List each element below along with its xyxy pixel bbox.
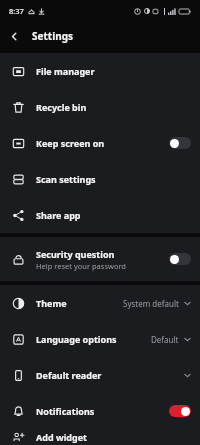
button[interactable]: Theme <box>0 285 200 321</box>
staticText: Theme <box>36 297 67 309</box>
staticText: Recycle bin <box>36 101 87 113</box>
staticText: Default reader <box>36 369 102 381</box>
button[interactable]: Default reader <box>0 357 200 393</box>
button[interactable]: Back <box>0 22 28 50</box>
button[interactable]: Keep screen on <box>0 125 200 161</box>
staticText: Help reset your password <box>36 261 126 271</box>
button[interactable]: Recycle bin <box>0 89 200 125</box>
staticText: Scan settings <box>36 173 96 185</box>
button[interactable]: Toggle off <box>169 253 191 265</box>
staticText: Add widget <box>36 431 87 443</box>
staticText: Notifications <box>36 405 95 417</box>
staticText: System default <box>123 298 179 309</box>
staticText: Keep screen on <box>36 137 105 149</box>
button[interactable]: Security question <box>0 237 200 281</box>
button[interactable]: Toggle off <box>169 137 191 149</box>
staticText: Language options <box>36 333 117 345</box>
staticText: Settings <box>32 29 73 43</box>
button[interactable]: File manager <box>0 53 200 89</box>
staticText: Security question <box>36 248 115 260</box>
button[interactable]: Share app <box>0 197 200 233</box>
button[interactable]: Scan settings <box>0 161 200 197</box>
button[interactable]: Notifications <box>0 393 200 429</box>
staticText: 8:37 <box>9 6 24 16</box>
staticText: Default <box>151 334 179 345</box>
button[interactable]: Add widget <box>0 429 200 445</box>
staticText: File manager <box>36 65 95 77</box>
button[interactable]: Language options <box>0 321 200 357</box>
button[interactable]: Toggle on <box>169 405 191 417</box>
staticText: Share app <box>36 209 81 221</box>
